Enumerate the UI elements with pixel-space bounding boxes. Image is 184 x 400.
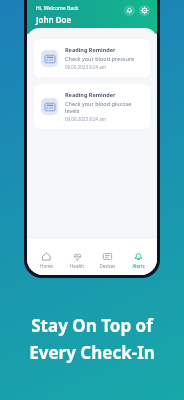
staticText: Check your blood glucose levels — [65, 100, 143, 114]
button[interactable]: Reading Reminder — [34, 84, 150, 129]
staticText: Reading Reminder — [65, 91, 116, 98]
staticText: 09.00.2023 8:24 am — [65, 64, 107, 70]
staticText: Hi, Welcome Back — [36, 5, 79, 12]
staticText: Devices — [99, 263, 116, 269]
staticText: Reading Reminder — [65, 46, 116, 53]
button[interactable]: Health — [62, 249, 92, 272]
staticText: Every Check-In — [29, 341, 155, 364]
staticText: Check your blood pressure — [65, 55, 135, 62]
staticText: John Doe — [36, 14, 72, 25]
button[interactable]: Notifications — [124, 5, 135, 16]
button[interactable]: Settings — [139, 5, 150, 16]
staticText: Stay On Top of — [31, 314, 153, 337]
staticText: Alerts — [132, 263, 145, 269]
staticText: 09.00.2023 8:24 am — [65, 116, 107, 122]
button[interactable]: Home — [31, 249, 61, 272]
button[interactable]: Alerts — [123, 249, 153, 272]
staticText: Home — [40, 263, 53, 269]
button[interactable]: Devices — [92, 249, 122, 272]
button[interactable]: Reading Reminder — [34, 39, 150, 77]
staticText: Health — [70, 263, 84, 269]
